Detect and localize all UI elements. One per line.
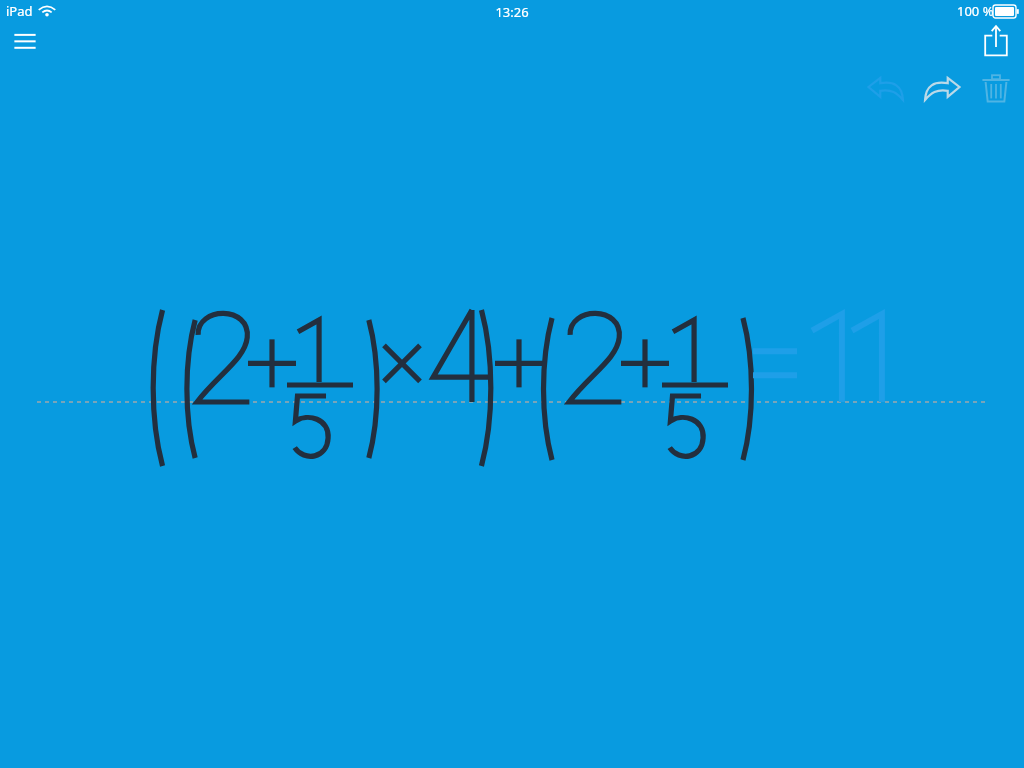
button[interactable]: Delete: [976, 68, 1016, 108]
staticText: 100 %: [957, 2, 994, 20]
button[interactable]: Undo: [866, 68, 908, 106]
staticText: 13:26: [0, 3, 1024, 768]
staticText: iPad: [6, 2, 33, 20]
button[interactable]: Menu: [6, 24, 44, 58]
button[interactable]: Share: [978, 22, 1014, 60]
button[interactable]: Redo: [920, 68, 962, 106]
